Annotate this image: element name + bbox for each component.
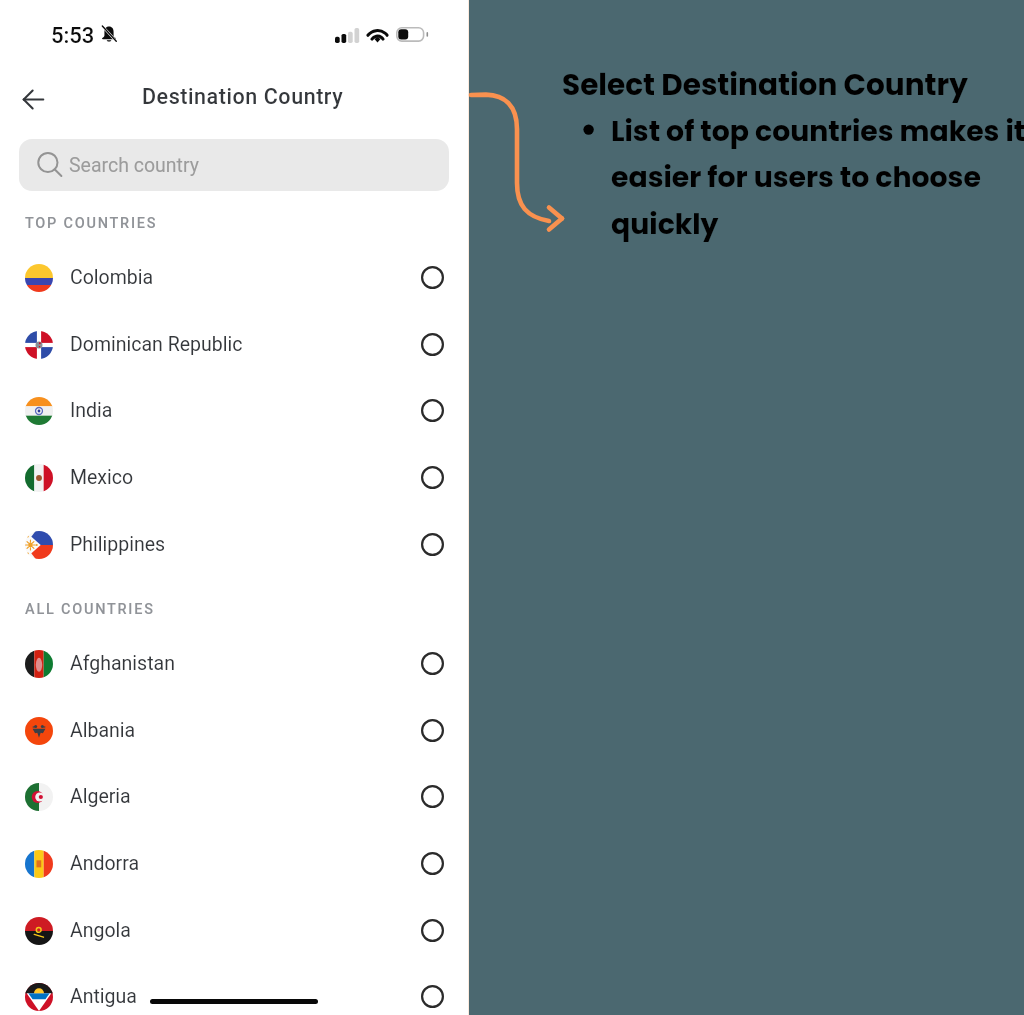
button[interactable]: Back (11, 77, 56, 122)
staticText: Albania (70, 719, 136, 742)
staticText: Colombia (70, 266, 154, 289)
staticText: 5:53 (51, 23, 95, 49)
button[interactable]: Afghanistan (0, 630, 468, 697)
button[interactable]: Algeria (0, 763, 468, 830)
button[interactable]: Dominican Republic (0, 311, 468, 378)
staticText: Algeria (70, 785, 131, 808)
button[interactable]: Philippines (0, 511, 468, 578)
staticText: Select Destination Country (562, 64, 968, 105)
staticText: Destination Country (142, 84, 344, 109)
staticText: TOP COUNTRIES (25, 215, 158, 232)
button[interactable]: Andorra (0, 830, 468, 897)
button[interactable]: Colombia (0, 244, 468, 311)
staticText: Mexico (70, 466, 134, 489)
staticText: Antigua (70, 985, 137, 1008)
button[interactable]: India (0, 377, 468, 444)
staticText: ALL COUNTRIES (25, 601, 155, 618)
button[interactable]: Mexico (0, 444, 468, 511)
button[interactable]: Search country (19, 139, 449, 191)
button[interactable]: Angola (0, 897, 468, 964)
staticText: India (70, 399, 113, 422)
button[interactable]: Albania (0, 697, 468, 764)
staticText: Philippines (70, 533, 166, 556)
button[interactable]: Antigua (0, 963, 468, 1015)
staticText: List of top countries makes it easier fo… (611, 111, 1024, 244)
staticText: Angola (70, 919, 131, 942)
staticText: Afghanistan (70, 652, 175, 675)
staticText: Andorra (70, 852, 140, 875)
staticText: Dominican Republic (70, 333, 243, 356)
staticText: Search country (69, 154, 199, 177)
